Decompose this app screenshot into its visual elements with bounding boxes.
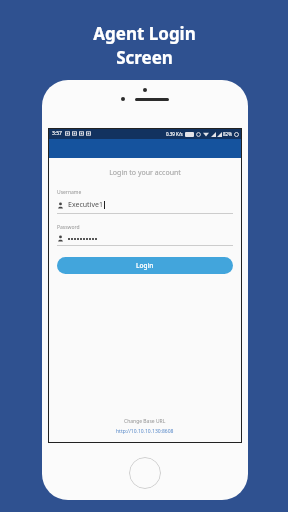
staticText: Login xyxy=(136,261,154,270)
staticText: Password xyxy=(57,224,80,231)
staticText: Agent Login xyxy=(93,22,196,45)
staticText: 0.39 K/s xyxy=(166,131,183,137)
staticText: http://10.10.10.130:8608 xyxy=(116,428,174,435)
staticText: Username xyxy=(57,189,82,196)
button[interactable]: Home xyxy=(129,457,161,489)
staticText: Screen xyxy=(116,46,173,69)
button[interactable]: Executive1 xyxy=(57,200,233,214)
staticText: 82% xyxy=(223,131,232,137)
staticText: Executive1 xyxy=(68,200,103,210)
staticText: Change Base URL xyxy=(124,418,166,425)
button[interactable]: http://10.10.10.130:8608 xyxy=(116,428,174,435)
button[interactable]: Change Base URL xyxy=(124,418,166,425)
staticText: Login to your account xyxy=(57,168,233,178)
button[interactable] xyxy=(57,235,233,246)
button[interactable]: Login xyxy=(57,257,233,274)
staticText: 3:57 xyxy=(52,130,62,137)
